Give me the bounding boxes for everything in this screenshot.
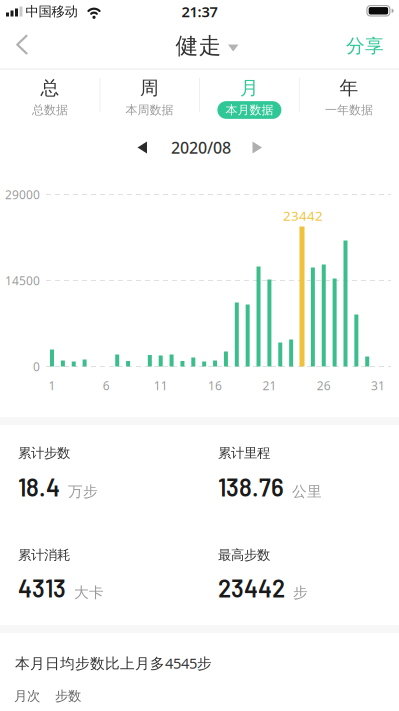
staticText: 29000 bbox=[5, 186, 40, 202]
staticText: 月次 bbox=[14, 688, 40, 704]
staticText: 14500 bbox=[5, 272, 40, 288]
staticText: 4313 bbox=[18, 574, 66, 602]
staticText: 总 bbox=[40, 76, 59, 99]
staticText: 2020/08 bbox=[171, 137, 231, 158]
staticText: 最高步数 bbox=[218, 547, 270, 563]
staticText: 138.76 bbox=[218, 473, 284, 501]
staticText: 31 bbox=[371, 377, 385, 393]
staticText: 23442 bbox=[218, 574, 285, 602]
staticText: 本周数据 bbox=[126, 103, 174, 117]
staticText: 16 bbox=[208, 377, 222, 393]
staticText: 月 bbox=[240, 76, 259, 99]
staticText: 本月数据 bbox=[225, 103, 273, 117]
button[interactable]: 分享 bbox=[346, 34, 384, 57]
staticText: 本月日均步数比上月多4545步 bbox=[15, 653, 212, 673]
button[interactable]: 年 bbox=[300, 69, 399, 126]
staticText: 分享 bbox=[346, 34, 384, 57]
button[interactable]: 月 bbox=[200, 69, 299, 126]
staticText: 23442 bbox=[283, 207, 323, 224]
button[interactable]: 健走 bbox=[166, 26, 244, 66]
staticText: 21 bbox=[262, 377, 276, 393]
button[interactable]: Next month bbox=[242, 132, 272, 162]
button[interactable]: 周 bbox=[100, 69, 199, 126]
staticText: 21:37 bbox=[181, 2, 217, 21]
staticText: 公里 bbox=[292, 483, 322, 501]
staticText: 11 bbox=[154, 377, 168, 393]
staticText: 万步 bbox=[68, 483, 98, 501]
staticText: 26 bbox=[317, 377, 331, 393]
staticText: 总数据 bbox=[32, 103, 68, 117]
staticText: 一年数据 bbox=[325, 103, 373, 117]
staticText: 健走 bbox=[175, 32, 221, 60]
button[interactable]: Previous month bbox=[127, 132, 157, 162]
button[interactable]: 总 bbox=[0, 69, 99, 126]
staticText: 步 bbox=[293, 584, 308, 602]
staticText: 18.4 bbox=[18, 473, 60, 501]
staticText: 累计步数 bbox=[18, 445, 70, 461]
staticText: 步数 bbox=[55, 688, 81, 704]
staticText: 周 bbox=[140, 76, 159, 99]
staticText: 累计里程 bbox=[218, 445, 270, 461]
staticText: 1 bbox=[48, 377, 55, 393]
staticText: 6 bbox=[103, 377, 110, 393]
button[interactable]: Back bbox=[0, 23, 44, 67]
staticText: 累计消耗 bbox=[18, 547, 70, 563]
staticText: 0 bbox=[33, 358, 40, 374]
staticText: 中国移动 bbox=[25, 3, 77, 20]
staticText: 大卡 bbox=[74, 584, 104, 602]
staticText: 年 bbox=[340, 76, 359, 99]
